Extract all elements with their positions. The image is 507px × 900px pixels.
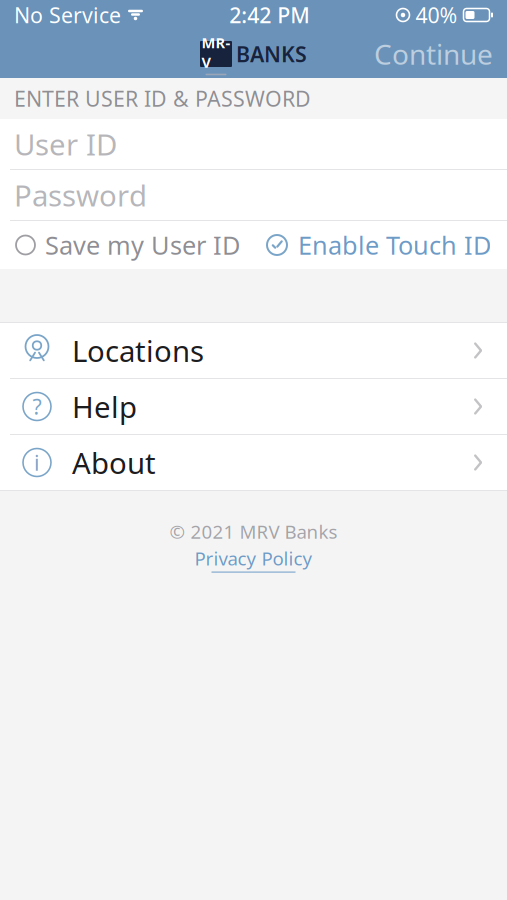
button[interactable]: User ID bbox=[0, 119, 507, 169]
staticText: BANKS bbox=[236, 40, 307, 68]
button[interactable]: Enable Touch ID bbox=[265, 218, 491, 272]
staticText: Password bbox=[14, 175, 147, 214]
staticText: Enable Touch ID bbox=[298, 228, 491, 262]
staticText: © 2021 MRV Banks bbox=[169, 519, 337, 544]
button[interactable]: Password bbox=[0, 170, 507, 220]
button[interactable]: Save my User ID bbox=[16, 218, 240, 272]
staticText: Privacy Policy bbox=[194, 546, 312, 571]
staticText: ? bbox=[32, 392, 41, 421]
button[interactable]: i bbox=[0, 435, 507, 490]
staticText: i bbox=[34, 448, 40, 477]
staticText: User ID bbox=[14, 124, 117, 163]
button[interactable]: Continue bbox=[360, 27, 507, 81]
staticText: ENTER USER ID & PASSWORD bbox=[14, 84, 311, 113]
staticText: Continue bbox=[374, 35, 493, 73]
staticText: About bbox=[72, 443, 156, 482]
staticText: Help bbox=[72, 387, 137, 426]
button[interactable]: Privacy Policy bbox=[194, 546, 312, 573]
button[interactable]: Locations bbox=[0, 323, 507, 378]
staticText: Save my User ID bbox=[45, 228, 240, 262]
staticText: 2:42 PM bbox=[229, 1, 310, 29]
button[interactable]: ? bbox=[0, 379, 507, 434]
staticText: No Service bbox=[14, 1, 121, 29]
staticText: MRV bbox=[201, 33, 230, 72]
staticText: Locations bbox=[72, 331, 204, 370]
staticText: 40% bbox=[415, 1, 457, 29]
